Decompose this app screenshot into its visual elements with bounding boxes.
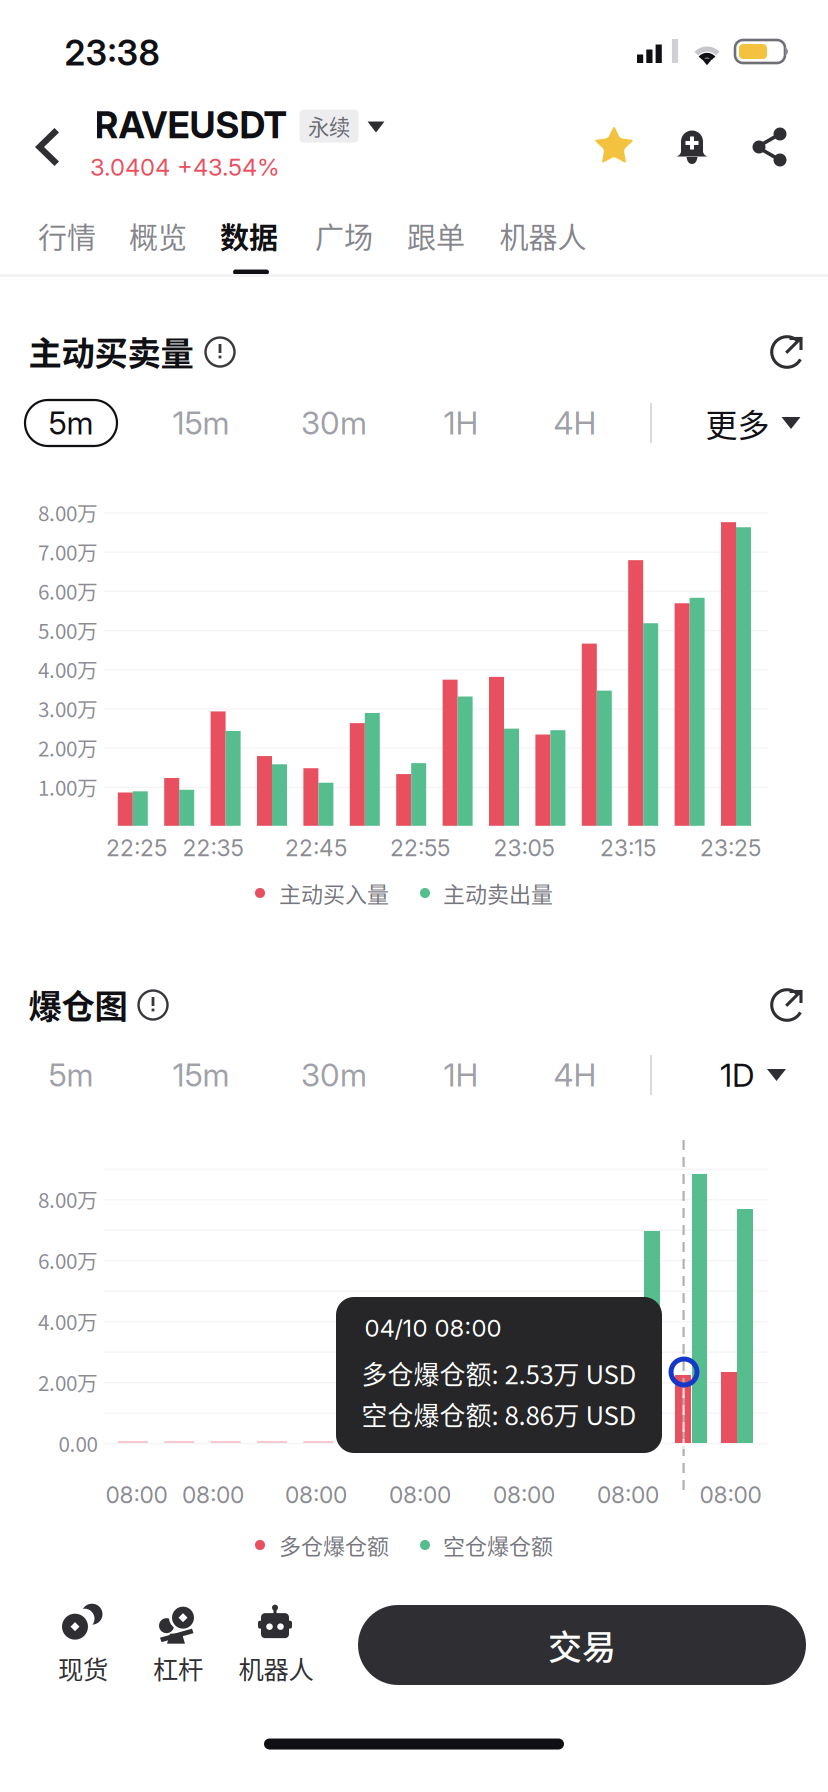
staticText: 23:25	[700, 834, 761, 862]
staticText: 08:00	[597, 1481, 659, 1509]
button[interactable]: 4H	[521, 1052, 629, 1098]
button[interactable]: 数据	[209, 199, 289, 273]
button[interactable]: 5m	[25, 400, 117, 446]
button[interactable]: 更多	[691, 388, 814, 458]
button[interactable]: 30m	[280, 1052, 388, 1098]
staticText: 交易	[548, 1620, 616, 1670]
staticText: 主动卖出量	[443, 877, 553, 909]
staticText: 空仓爆仓额: 8.86万 USD	[361, 1395, 636, 1433]
staticText: 3.00万	[38, 693, 98, 723]
staticText: 1H	[443, 1056, 478, 1094]
staticText: 空仓爆仓额	[443, 1529, 553, 1561]
staticText: 6.00万	[38, 576, 98, 606]
button[interactable]: 15m	[147, 1052, 255, 1098]
button[interactable]: 1D	[706, 1044, 800, 1106]
staticText: 机器人	[238, 1650, 313, 1686]
staticText: 4.00万	[38, 654, 98, 684]
staticText: 多仓爆仓额	[279, 1529, 389, 1561]
staticText: 永续	[308, 111, 350, 141]
staticText: 15m	[172, 404, 229, 442]
button[interactable]: Back	[8, 102, 85, 192]
staticText: 5.00万	[38, 615, 98, 645]
button[interactable]: 概览	[118, 199, 198, 273]
staticText: 30m	[301, 1056, 367, 1094]
staticText: 08:00	[182, 1481, 244, 1509]
staticText: 机器人	[499, 215, 586, 257]
staticText: 7.00万	[38, 537, 98, 566]
staticText: 2.00万	[38, 1367, 98, 1397]
button[interactable]: 杠杆	[139, 1598, 217, 1692]
staticText: 多仓爆仓额: 2.53万 USD	[361, 1354, 636, 1392]
staticText: 4.00万	[38, 1306, 98, 1336]
staticText: 更多	[705, 400, 769, 446]
button[interactable]: 30m	[280, 400, 388, 446]
button[interactable]: Price alert	[654, 106, 729, 186]
staticText: 08:00	[105, 1481, 167, 1509]
button[interactable]: Open full chart	[748, 313, 826, 391]
staticText: 2.00万	[38, 732, 98, 762]
button[interactable]: 行情	[27, 199, 107, 273]
staticText: 22:55	[390, 834, 450, 862]
button[interactable]: 跟单	[396, 199, 476, 273]
staticText: 22:35	[182, 834, 243, 862]
staticText: 22:45	[285, 834, 347, 862]
button[interactable]: 交易	[358, 1605, 806, 1685]
staticText: 4H	[553, 1056, 596, 1094]
button[interactable]: 机器人	[224, 1598, 327, 1692]
staticText: 23:05	[493, 834, 554, 862]
button[interactable]: 15m	[147, 400, 255, 446]
staticText: 5m	[48, 404, 93, 442]
staticText: 08:00	[285, 1481, 347, 1509]
staticText: 22:25	[106, 834, 167, 862]
staticText: 08:00	[493, 1481, 555, 1509]
staticText: 主动买入量	[279, 877, 389, 909]
staticText: 现货	[58, 1650, 108, 1686]
staticText: 6.00万	[38, 1245, 98, 1275]
staticText: 30m	[301, 404, 367, 442]
staticText: 数据	[220, 215, 278, 257]
staticText: 爆仓图	[28, 980, 127, 1028]
staticText: 1H	[443, 404, 478, 442]
button[interactable]: 5m	[17, 1052, 125, 1098]
staticText: 主动买卖量	[28, 327, 193, 375]
staticText: 8.00万	[38, 1184, 98, 1214]
staticText: 23:15	[600, 834, 656, 862]
staticText: 1D	[720, 1056, 755, 1094]
button[interactable]: Favorite	[571, 104, 657, 189]
staticText: 3.0404 +43.54%	[90, 153, 280, 181]
staticText: 广场	[315, 215, 373, 257]
staticText: 跟单	[407, 215, 465, 257]
staticText: 概览	[129, 215, 187, 257]
staticText: 5m	[48, 1056, 93, 1094]
button[interactable]: 现货	[44, 1598, 122, 1692]
staticText: 杠杆	[153, 1650, 203, 1686]
button[interactable]: 机器人	[488, 199, 597, 273]
staticText: 08:00	[699, 1481, 761, 1509]
button[interactable]: Open full chart	[748, 966, 826, 1044]
staticText: 23:38	[64, 32, 159, 74]
staticText: 0.00	[58, 1428, 97, 1458]
staticText: 04/10 08:00	[364, 1313, 501, 1342]
staticText: 08:00	[389, 1481, 451, 1509]
staticText: 8.00万	[38, 497, 98, 527]
staticText: 行情	[38, 215, 96, 257]
staticText: 15m	[172, 1056, 229, 1094]
button[interactable]: 1H	[407, 1052, 515, 1098]
staticText: 1.00万	[38, 772, 98, 802]
staticText: 4H	[553, 404, 596, 442]
button[interactable]: 1H	[407, 400, 515, 446]
staticText: RAVEUSDT	[94, 103, 287, 147]
button[interactable]: 4H	[521, 400, 629, 446]
button[interactable]: 广场	[304, 199, 384, 273]
button[interactable]: Share	[730, 105, 808, 189]
